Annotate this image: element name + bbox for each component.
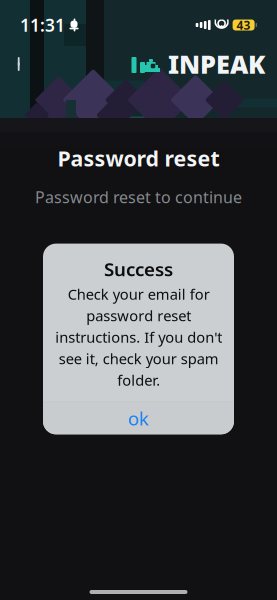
staticText: INPEAK [168,47,265,81]
staticText: Check your email for password reset inst… [55,284,222,390]
button[interactable]: ok [43,402,234,434]
staticText: 11:31 [20,13,65,36]
staticText: Password reset [57,144,219,172]
staticText: ok [128,406,149,431]
button[interactable]: INPEAK [128,47,277,81]
staticText: Success [104,257,173,281]
staticText: Password reset to continue [35,186,242,207]
staticText: 43 [237,17,251,33]
button[interactable]: Back [0,44,40,84]
